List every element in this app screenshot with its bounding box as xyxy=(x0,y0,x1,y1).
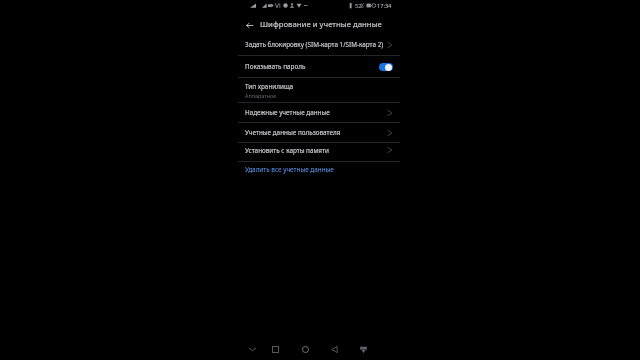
button[interactable]: Установить с карты памяти xyxy=(234,143,405,161)
staticText: 17:34 xyxy=(377,2,392,10)
button[interactable]: Hide xyxy=(245,342,259,356)
button[interactable]: Home xyxy=(298,342,312,356)
button[interactable]: Показывать пароль xyxy=(234,56,405,77)
button[interactable]: Hide keyboard xyxy=(356,342,370,356)
staticText: Шифрование и учетные данные xyxy=(260,19,382,30)
button[interactable]: Back xyxy=(327,342,341,356)
staticText: Учетные данные пользователя xyxy=(245,128,387,137)
button[interactable]: Тип хранилища xyxy=(234,78,405,102)
button[interactable]: Back xyxy=(241,17,257,33)
button[interactable]: Recents xyxy=(268,342,282,356)
staticText: Аппаратное xyxy=(245,92,277,99)
staticText: Показывать пароль xyxy=(245,62,379,71)
staticText: Удалить все учетные данные xyxy=(245,165,393,174)
staticText: Надежные учетные данные xyxy=(245,108,387,117)
button[interactable]: Задать блокировку (SIM-карта 1/SIM-карта… xyxy=(234,34,405,55)
staticText: Тип хранилища xyxy=(245,82,294,91)
staticText: Задать блокировку (SIM-карта 1/SIM-карта… xyxy=(245,40,387,49)
staticText: Установить с карты памяти xyxy=(245,146,387,155)
button[interactable]: Удалить все учетные данные xyxy=(234,162,405,180)
button[interactable]: Надежные учетные данные xyxy=(234,103,405,122)
button[interactable]: Учетные данные пользователя xyxy=(234,123,405,142)
staticText: 52 xyxy=(355,2,362,10)
